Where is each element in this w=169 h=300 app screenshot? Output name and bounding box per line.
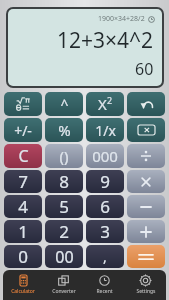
button[interactable]: 7 xyxy=(4,170,42,193)
button[interactable]: Recent xyxy=(84,270,125,300)
staticText: 8 xyxy=(59,170,69,193)
button[interactable]: Divide xyxy=(127,144,165,168)
staticText: 7 xyxy=(18,170,28,193)
staticText: % xyxy=(58,120,71,140)
button[interactable]: 1 xyxy=(4,220,42,243)
button[interactable]: 9 xyxy=(86,170,124,193)
staticText: ^ xyxy=(60,95,69,114)
staticText: X xyxy=(98,94,107,114)
button[interactable]: 3 xyxy=(86,220,124,243)
button[interactable]: Calculator xyxy=(3,270,43,300)
staticText: 12+3×4^2 xyxy=(57,26,154,55)
staticText: Recent xyxy=(96,288,113,295)
button[interactable]: 4 xyxy=(4,195,42,218)
button[interactable]: Plus xyxy=(127,220,165,243)
button[interactable]: 1900×34+28/2 xyxy=(8,9,162,86)
button[interactable]: ^ xyxy=(45,92,83,116)
button[interactable]: 6 xyxy=(86,195,124,218)
staticText: 6 xyxy=(100,195,110,218)
staticText: 2 xyxy=(59,220,69,243)
button[interactable]: () xyxy=(45,144,83,168)
staticText: 0 xyxy=(18,245,28,268)
button[interactable]: Converter xyxy=(43,270,84,300)
button[interactable]: +/- xyxy=(4,118,42,142)
staticText: Calculator xyxy=(11,288,35,295)
button[interactable]: 5 xyxy=(45,195,83,218)
staticText: 000 xyxy=(92,146,118,166)
staticText: 5 xyxy=(59,195,69,218)
button[interactable]: Undo xyxy=(127,92,165,116)
staticText: 1 xyxy=(18,220,28,243)
staticText: 2 xyxy=(107,94,113,106)
staticText: 00 xyxy=(55,246,74,268)
button[interactable]: % xyxy=(45,118,83,142)
staticText: 1900×34+28/2 xyxy=(98,14,145,24)
button[interactable]: Minus xyxy=(127,195,165,218)
button[interactable]: Formulas xyxy=(4,92,42,116)
button[interactable]: Equals xyxy=(127,245,165,268)
staticText: 60 xyxy=(135,58,154,80)
button[interactable]: 000 xyxy=(86,144,124,168)
button[interactable]: Settings xyxy=(125,270,166,300)
button[interactable]: Backspace xyxy=(127,118,165,142)
staticText: Converter xyxy=(52,288,76,295)
staticText: , xyxy=(103,247,107,266)
staticText: () xyxy=(59,146,69,166)
button[interactable]: 2 xyxy=(45,220,83,243)
button[interactable]: Multiply xyxy=(127,170,165,193)
button[interactable]: , xyxy=(86,245,124,268)
button[interactable]: 0 xyxy=(4,245,42,268)
button[interactable]: X squared xyxy=(86,92,124,116)
button[interactable]: 8 xyxy=(45,170,83,193)
button[interactable]: 00 xyxy=(45,245,83,268)
staticText: 4 xyxy=(18,195,28,218)
button[interactable]: C xyxy=(4,144,42,168)
staticText: C xyxy=(18,145,29,167)
staticText: 3 xyxy=(100,220,110,243)
staticText: +/- xyxy=(14,121,32,140)
button[interactable]: 1/x xyxy=(86,118,124,142)
staticText: 9 xyxy=(100,170,110,193)
staticText: 1/x xyxy=(95,121,116,140)
staticText: Settings xyxy=(136,288,156,295)
